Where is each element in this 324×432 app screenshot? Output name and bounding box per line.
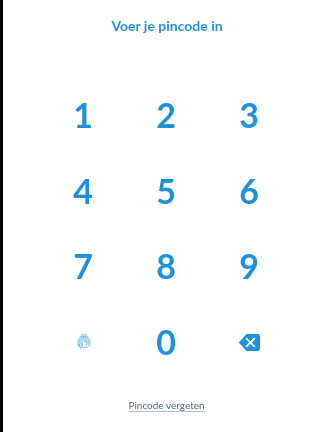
- staticText: Pincode vergeten: [128, 399, 205, 411]
- button[interactable]: 2: [131, 79, 201, 149]
- button[interactable]: Unlock with fingerprint: [48, 306, 118, 376]
- button[interactable]: 7: [48, 230, 118, 300]
- button[interactable]: Delete: [214, 306, 284, 376]
- button[interactable]: 9: [214, 230, 284, 300]
- button[interactable]: 1: [48, 79, 118, 149]
- staticText: 8: [156, 245, 176, 286]
- staticText: 1: [73, 94, 93, 135]
- staticText: 5: [156, 170, 176, 211]
- button[interactable]: 3: [214, 79, 284, 149]
- staticText: 6: [239, 170, 259, 211]
- button[interactable]: 4: [48, 155, 118, 225]
- button[interactable]: 6: [214, 155, 284, 225]
- staticText: 7: [73, 245, 93, 286]
- button[interactable]: Pincode vergeten: [116, 394, 216, 416]
- staticText: 0: [156, 321, 176, 362]
- staticText: 2: [156, 94, 176, 135]
- button[interactable]: 8: [131, 230, 201, 300]
- button[interactable]: 5: [131, 155, 201, 225]
- staticText: 3: [239, 94, 259, 135]
- button[interactable]: 0: [131, 306, 201, 376]
- staticText: 9: [239, 245, 259, 286]
- staticText: Voer je pincode in: [111, 17, 223, 34]
- staticText: 4: [73, 170, 93, 211]
